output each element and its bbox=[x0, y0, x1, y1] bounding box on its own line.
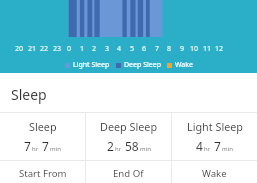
button[interactable]: Wake bbox=[172, 161, 257, 183]
staticText: 4 bbox=[117, 44, 122, 54]
staticText: Deep Sleep bbox=[100, 119, 158, 134]
staticText: 7 bbox=[214, 138, 221, 154]
staticText: 5 bbox=[130, 44, 135, 54]
staticText: hr bbox=[32, 145, 39, 153]
staticText: 7 bbox=[155, 44, 160, 54]
staticText: Start From bbox=[19, 167, 67, 180]
staticText: min bbox=[222, 145, 233, 153]
staticText: 23 bbox=[53, 44, 62, 54]
staticText: hr bbox=[115, 145, 122, 153]
button[interactable]: Wake bbox=[167, 60, 193, 70]
button[interactable]: Light Sleep bbox=[65, 60, 110, 70]
staticText: Light Sleep bbox=[187, 119, 243, 134]
staticText: 0 bbox=[67, 44, 72, 54]
staticText: 10 bbox=[190, 44, 199, 54]
staticText: 7 bbox=[42, 138, 49, 154]
staticText: min bbox=[50, 145, 61, 153]
button[interactable]: Light Sleep bbox=[172, 113, 257, 160]
staticText: 21 bbox=[28, 44, 37, 54]
button[interactable]: Start From bbox=[0, 161, 85, 183]
staticText: 8 bbox=[167, 44, 172, 54]
staticText: Light Sleep bbox=[73, 60, 110, 70]
staticText: min bbox=[140, 145, 151, 153]
staticText: Deep Sleep bbox=[124, 60, 161, 70]
staticText: End Of bbox=[113, 167, 144, 180]
staticText: 58 bbox=[125, 138, 139, 154]
staticText: 6 bbox=[142, 44, 147, 54]
staticText: Wake bbox=[175, 60, 193, 70]
button[interactable]: Deep Sleep bbox=[116, 60, 161, 70]
staticText: 3 bbox=[105, 44, 110, 54]
staticText: 9 bbox=[180, 44, 185, 54]
staticText: Sleep bbox=[29, 119, 57, 134]
staticText: 2 bbox=[92, 44, 97, 54]
staticText: Sleep bbox=[11, 85, 47, 104]
staticText: Wake bbox=[202, 167, 227, 180]
button[interactable]: Sleep bbox=[0, 113, 85, 160]
staticText: 20 bbox=[15, 44, 24, 54]
staticText: 12 bbox=[215, 44, 224, 54]
staticText: 11 bbox=[203, 44, 212, 54]
button[interactable]: End Of bbox=[86, 161, 171, 183]
button[interactable]: Deep Sleep bbox=[86, 113, 171, 160]
staticText: 4 bbox=[196, 138, 203, 154]
staticText: 22 bbox=[40, 44, 49, 54]
staticText: 1 bbox=[80, 44, 85, 54]
staticText: 2 bbox=[107, 138, 114, 154]
staticText: 7 bbox=[24, 138, 31, 154]
staticText: hr bbox=[204, 145, 211, 153]
